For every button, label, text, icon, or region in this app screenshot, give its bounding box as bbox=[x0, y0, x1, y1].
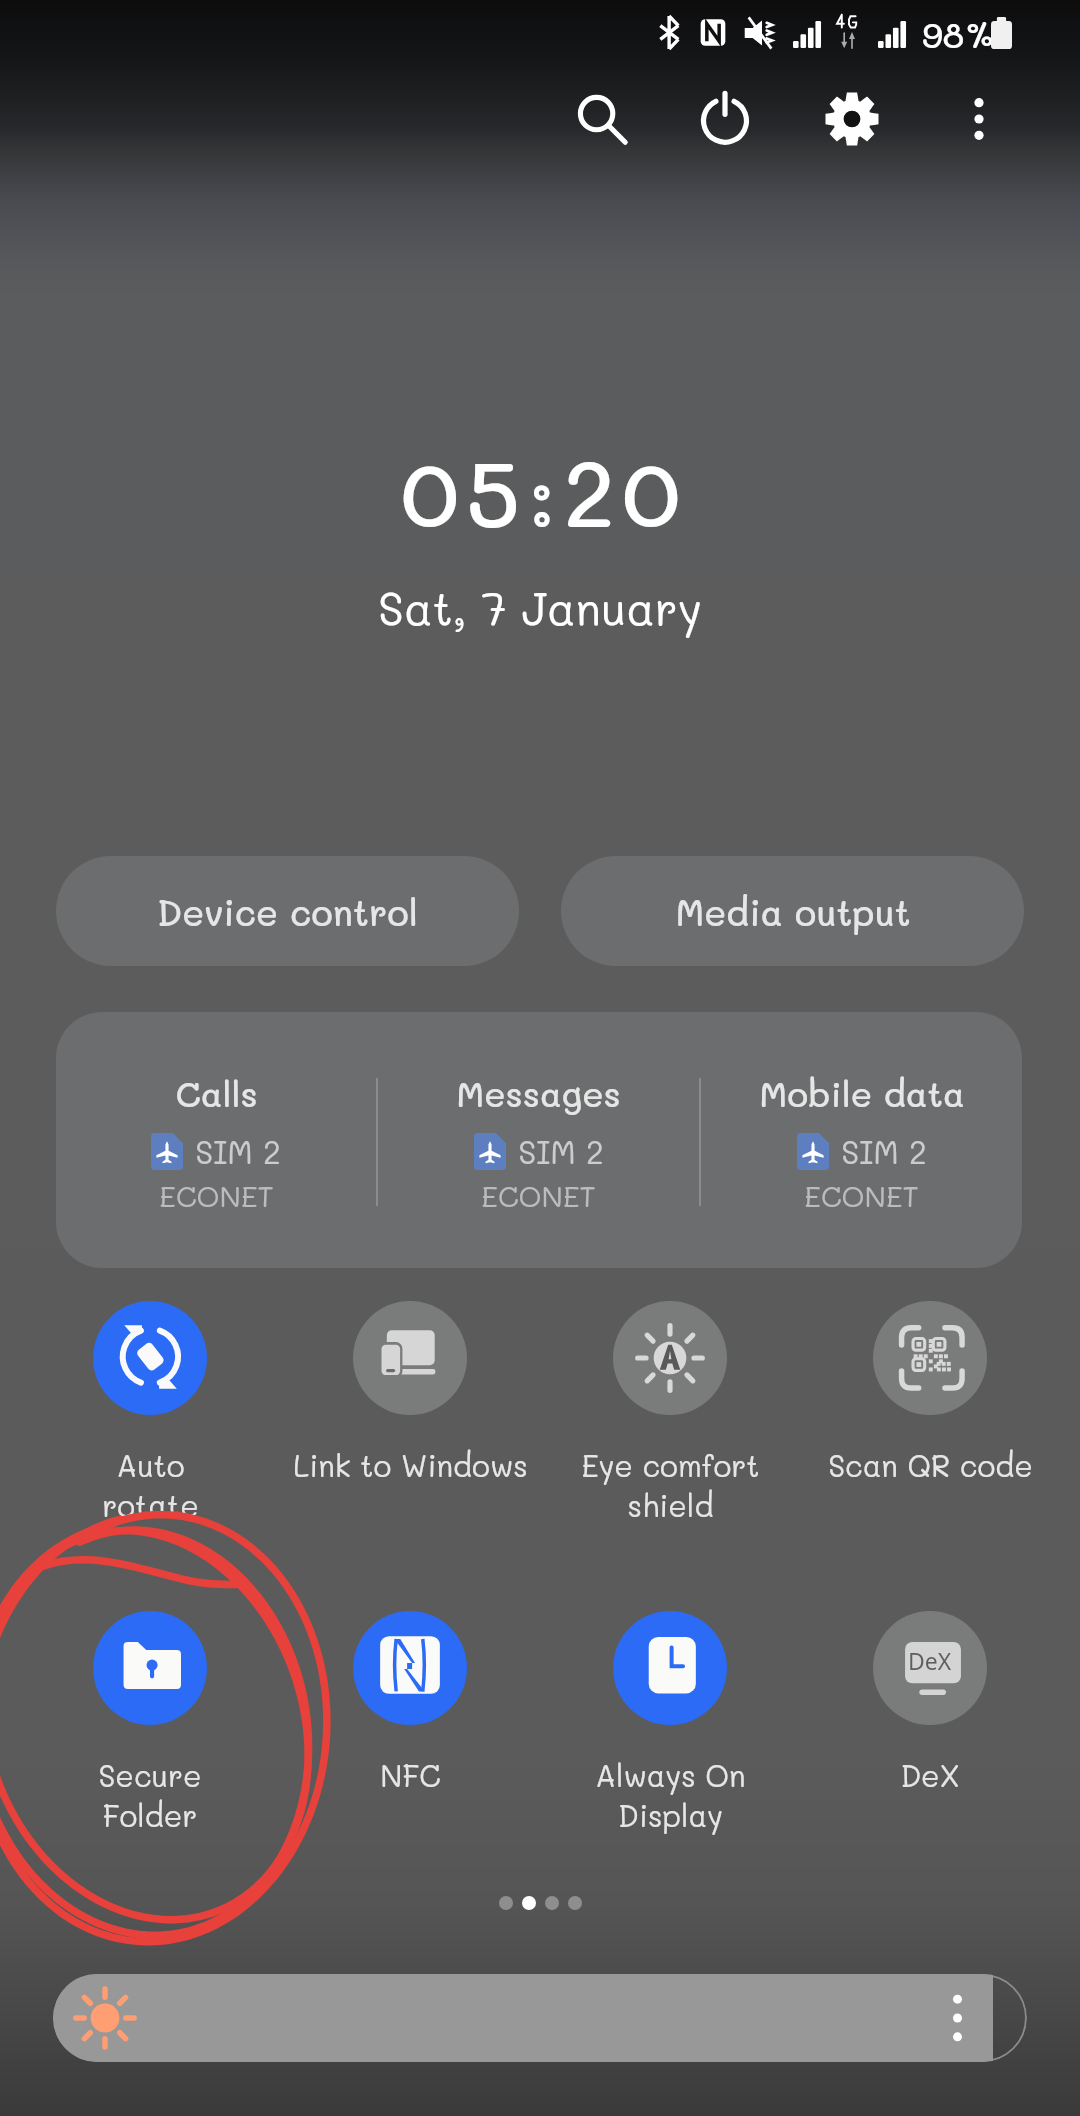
button[interactable]: Power off bbox=[669, 63, 781, 175]
button[interactable]: Brightness options bbox=[53, 1974, 1027, 2062]
staticText: Messages bbox=[456, 1070, 621, 1116]
other: Brightness options bbox=[953, 1995, 962, 2041]
staticText: NFC bbox=[380, 1756, 441, 1795]
staticText: ECONET bbox=[159, 1177, 274, 1215]
button[interactable]: Always On Display bbox=[540, 1611, 800, 1835]
staticText: Mobile data bbox=[759, 1070, 965, 1116]
staticText: Device control bbox=[157, 888, 418, 935]
staticText: Calls bbox=[175, 1070, 258, 1116]
button[interactable]: Calls bbox=[56, 1014, 376, 1268]
staticText: Media output bbox=[675, 888, 911, 935]
button[interactable]: Auto rotate bbox=[20, 1301, 280, 1525]
staticText: Auto rotate bbox=[102, 1446, 199, 1525]
staticText: 98% bbox=[922, 11, 996, 57]
staticText: SIM 2 bbox=[841, 1130, 927, 1172]
button[interactable]: NFC bbox=[280, 1611, 540, 1795]
staticText: Sat, 7 January bbox=[0, 578, 1080, 638]
staticText: Always On Display bbox=[595, 1756, 746, 1835]
staticText: Secure Folder bbox=[98, 1756, 202, 1835]
button[interactable]: Secure Folder bbox=[20, 1611, 280, 1835]
staticText: SIM 2 bbox=[518, 1130, 604, 1172]
button[interactable]: More options bbox=[923, 63, 1035, 175]
staticText: Eye comfort shield bbox=[581, 1446, 760, 1525]
staticText: ECONET bbox=[481, 1177, 596, 1215]
staticText: 05:20 bbox=[4, 430, 1080, 551]
staticText: Link to Windows bbox=[293, 1446, 528, 1485]
button[interactable]: Scan QR code bbox=[800, 1301, 1060, 1485]
staticText: DeX bbox=[908, 1645, 952, 1676]
button[interactable]: Mobile data bbox=[701, 1014, 1022, 1268]
button[interactable]: Media output bbox=[561, 856, 1024, 966]
button[interactable]: Link to Windows bbox=[280, 1301, 540, 1485]
staticText: SIM 2 bbox=[195, 1130, 281, 1172]
button[interactable]: Search bbox=[546, 63, 658, 175]
button[interactable]: Eye comfort shield bbox=[540, 1301, 800, 1525]
staticText: DeX bbox=[900, 1756, 960, 1795]
button[interactable]: Settings bbox=[796, 63, 908, 175]
button[interactable]: Messages bbox=[378, 1014, 699, 1268]
staticText: Scan QR code bbox=[828, 1446, 1033, 1485]
button[interactable]: DeX bbox=[800, 1611, 1060, 1795]
staticText: ECONET bbox=[804, 1177, 919, 1215]
button[interactable]: Device control bbox=[56, 856, 519, 966]
